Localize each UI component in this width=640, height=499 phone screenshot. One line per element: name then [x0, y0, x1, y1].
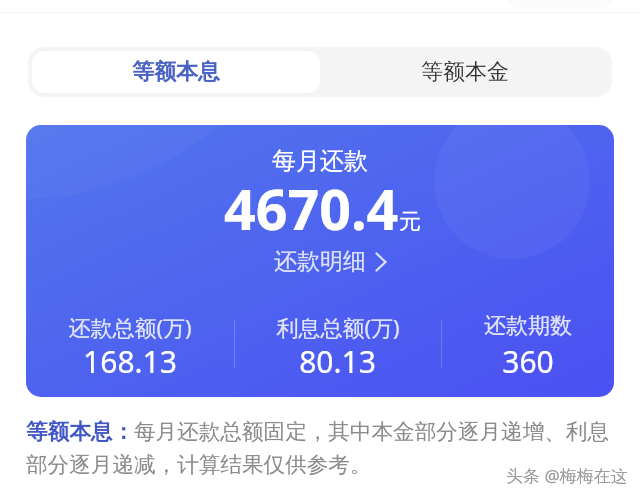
staticText: 元 — [399, 208, 421, 236]
staticText: 每月还款 — [272, 146, 368, 176]
staticText: 等额本息：每月还款总额固定，其中本金部分逐月递增、利息部分逐月递减，计算结果仅供… — [26, 418, 626, 479]
button[interactable]: 等额本金 — [324, 47, 612, 97]
staticText: 168.13 — [83, 341, 177, 382]
staticText: 头条 @梅梅在这 — [506, 464, 628, 487]
button[interactable]: 还款明细 — [266, 243, 395, 280]
staticText: 等额本金 — [421, 58, 509, 86]
staticText: 80.13 — [299, 341, 376, 382]
staticText: 等额本息 — [132, 58, 220, 86]
button[interactable]: 等额本息 — [32, 51, 320, 93]
staticText: 还款期数 — [484, 312, 572, 340]
staticText: 4670.4 — [224, 171, 399, 247]
staticText: 还款明细 — [274, 247, 366, 276]
staticText: 360 — [502, 341, 554, 382]
staticText: 利息总额(万) — [276, 312, 400, 342]
staticText: 还款总额(万) — [68, 312, 192, 342]
